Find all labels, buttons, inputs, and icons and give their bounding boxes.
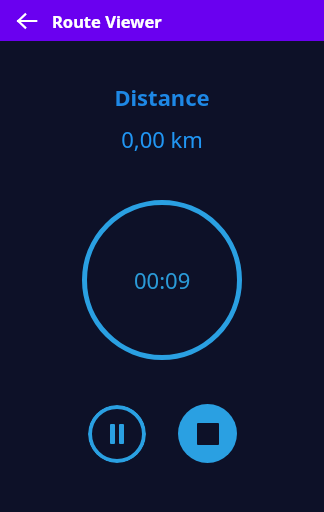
button[interactable]: Stop bbox=[178, 404, 237, 463]
staticText: Distance bbox=[114, 82, 210, 112]
staticText: Route Viewer bbox=[52, 10, 162, 32]
staticText: 00:09 bbox=[134, 265, 191, 295]
button[interactable]: Pause bbox=[88, 405, 146, 463]
staticText: 0,00 km bbox=[121, 124, 203, 154]
button[interactable]: Back bbox=[12, 6, 42, 36]
